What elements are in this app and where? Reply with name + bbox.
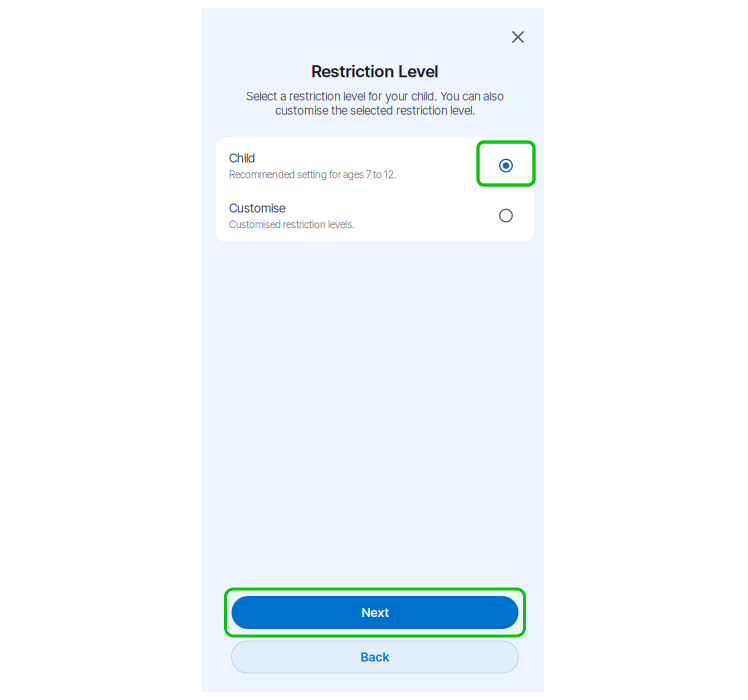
staticText: Next: [361, 605, 388, 620]
staticText: Recommended setting for ages 7 to 12.: [229, 168, 396, 181]
button[interactable]: Child: [216, 141, 534, 191]
button[interactable]: Close: [501, 20, 535, 54]
staticText: Child: [229, 150, 255, 165]
button[interactable]: Next: [225, 589, 524, 636]
button[interactable]: Back: [231, 641, 518, 673]
staticText: Restriction Level: [311, 61, 438, 81]
staticText: Select a restriction level for your chil…: [246, 89, 504, 118]
staticText: Customised restriction levels.: [229, 218, 354, 231]
staticText: Customise: [229, 200, 286, 215]
button[interactable]: Customise: [216, 191, 534, 241]
staticText: Back: [360, 649, 389, 665]
